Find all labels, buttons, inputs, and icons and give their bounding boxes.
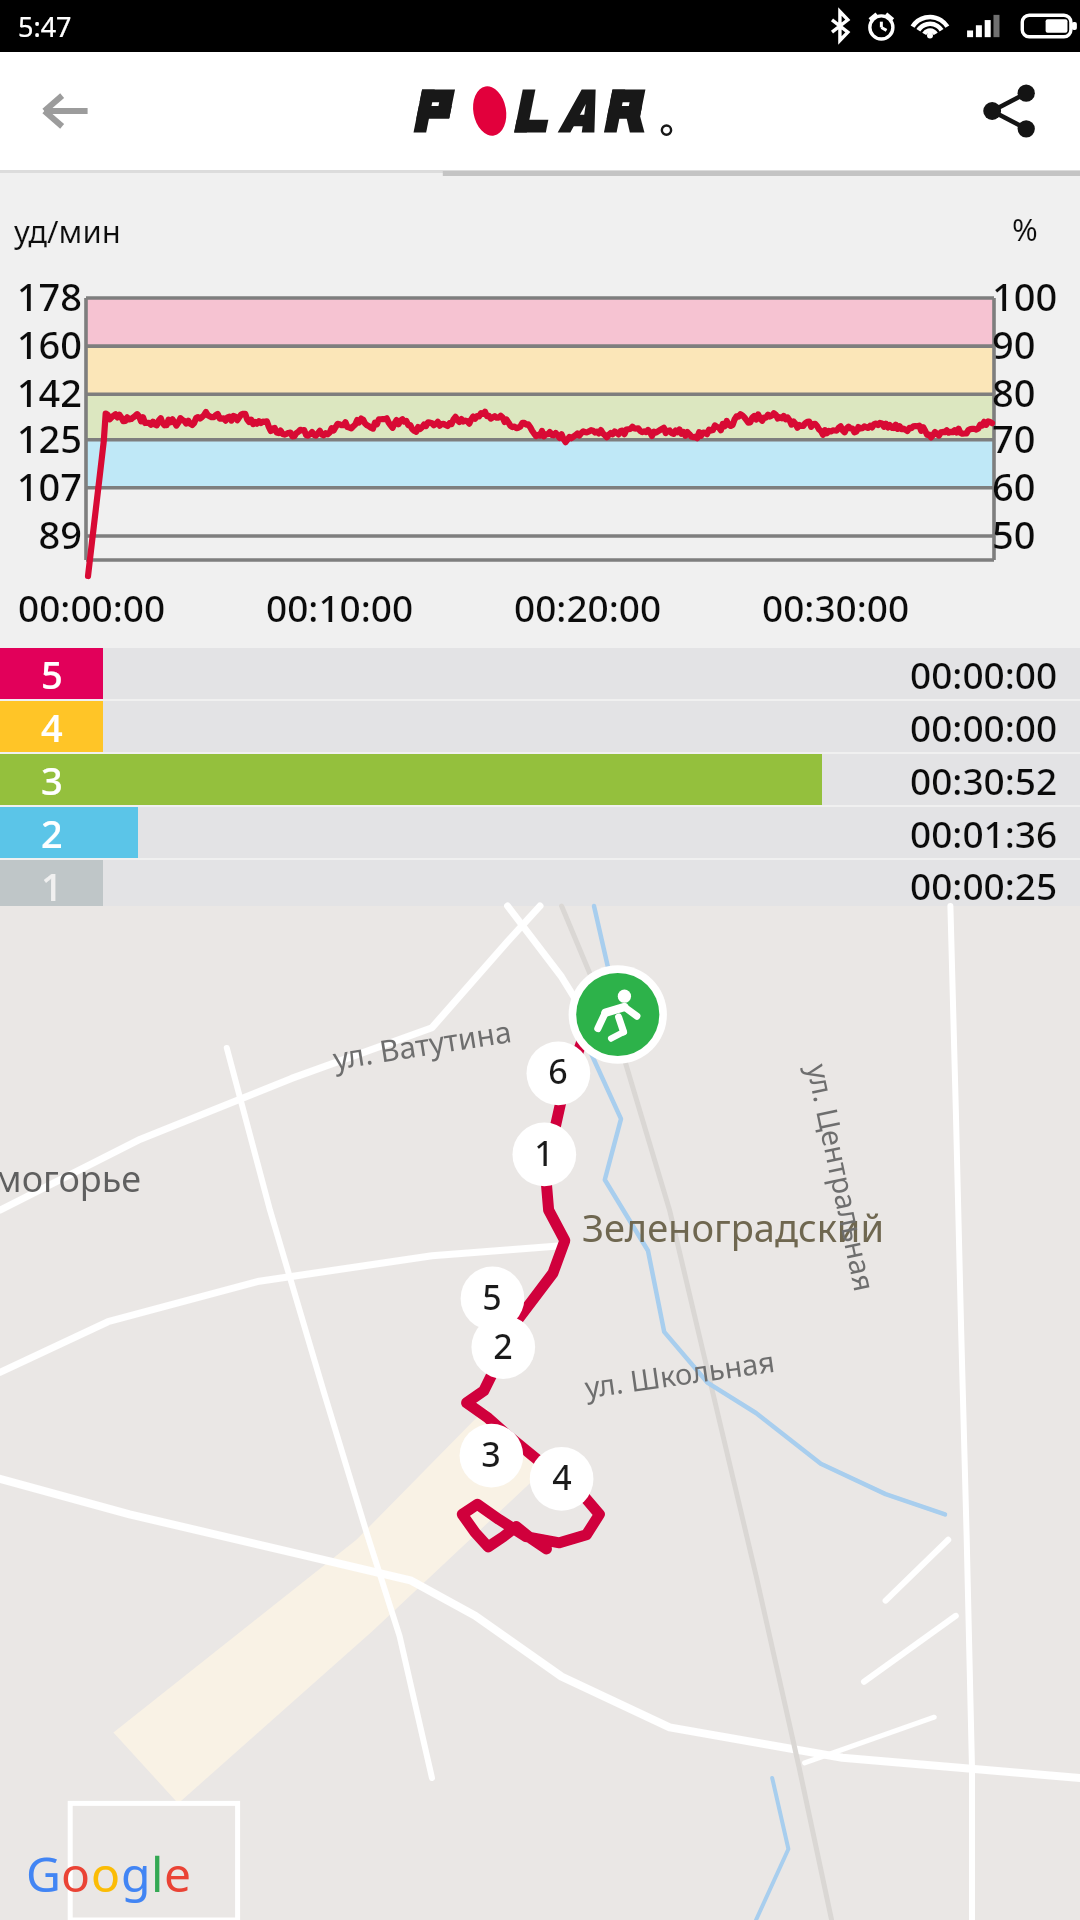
button[interactable]: 3 xyxy=(0,754,1080,805)
staticText: o xyxy=(91,1841,121,1906)
staticText: 00:00:00 xyxy=(910,702,1058,752)
staticText: % xyxy=(1012,208,1038,250)
staticText: 00:10:00 xyxy=(266,582,414,632)
staticText: l xyxy=(151,1841,164,1906)
staticText: 5 xyxy=(460,1274,524,1320)
staticText: ул. Центральная xyxy=(799,1060,885,1295)
staticText: 107 xyxy=(10,460,82,512)
button[interactable]: 5 xyxy=(0,648,1080,699)
staticText: 2 xyxy=(471,1323,535,1369)
staticText: 4 xyxy=(530,1454,594,1500)
staticText: 50 xyxy=(992,508,1070,560)
staticText: G xyxy=(26,1841,61,1906)
button[interactable]: Back xyxy=(26,71,106,151)
staticText: 142 xyxy=(10,366,82,418)
staticText: 00:30:52 xyxy=(910,755,1058,805)
staticText: g xyxy=(121,1841,151,1906)
staticText: 6 xyxy=(526,1048,590,1094)
staticText: e xyxy=(164,1841,192,1906)
staticText: ул. Школьная xyxy=(582,1341,778,1406)
staticText: 90 xyxy=(992,318,1070,370)
button[interactable]: 1 xyxy=(0,860,1080,906)
button[interactable]: 4 xyxy=(0,701,1080,752)
staticText: 1 xyxy=(512,1130,576,1176)
staticText: 00:00:25 xyxy=(910,860,1058,906)
staticText: 4 xyxy=(41,701,63,752)
staticText: 125 xyxy=(10,412,82,464)
staticText: 00:20:00 xyxy=(514,582,662,632)
staticText: 5 xyxy=(41,648,63,699)
button[interactable]: Share xyxy=(968,69,1052,153)
button[interactable]: 2 xyxy=(0,807,1080,858)
staticText: 00:30:00 xyxy=(762,582,910,632)
staticText: 80 xyxy=(992,366,1070,418)
staticText: 1 xyxy=(41,860,63,906)
staticText: 00:01:36 xyxy=(910,808,1058,858)
staticText: o xyxy=(61,1841,91,1906)
staticText: уд/мин xyxy=(14,210,121,252)
staticText: 5:47 xyxy=(18,8,72,45)
staticText: 2 xyxy=(41,807,63,858)
staticText: 70 xyxy=(992,412,1070,464)
staticText: 100 xyxy=(992,270,1070,322)
staticText: 60 xyxy=(992,460,1070,512)
staticText: 160 xyxy=(10,318,82,370)
staticText: Зеленоградский xyxy=(582,1201,885,1253)
staticText: 00:00:00 xyxy=(910,649,1058,699)
staticText: 178 xyxy=(10,270,82,322)
staticText: 3 xyxy=(41,754,63,805)
staticText: могорье xyxy=(0,1154,142,1203)
staticText: 00:00:00 xyxy=(18,582,166,632)
staticText: ул. Ватутина xyxy=(330,1010,514,1079)
staticText: 89 xyxy=(10,508,82,560)
staticText: 3 xyxy=(459,1431,523,1477)
